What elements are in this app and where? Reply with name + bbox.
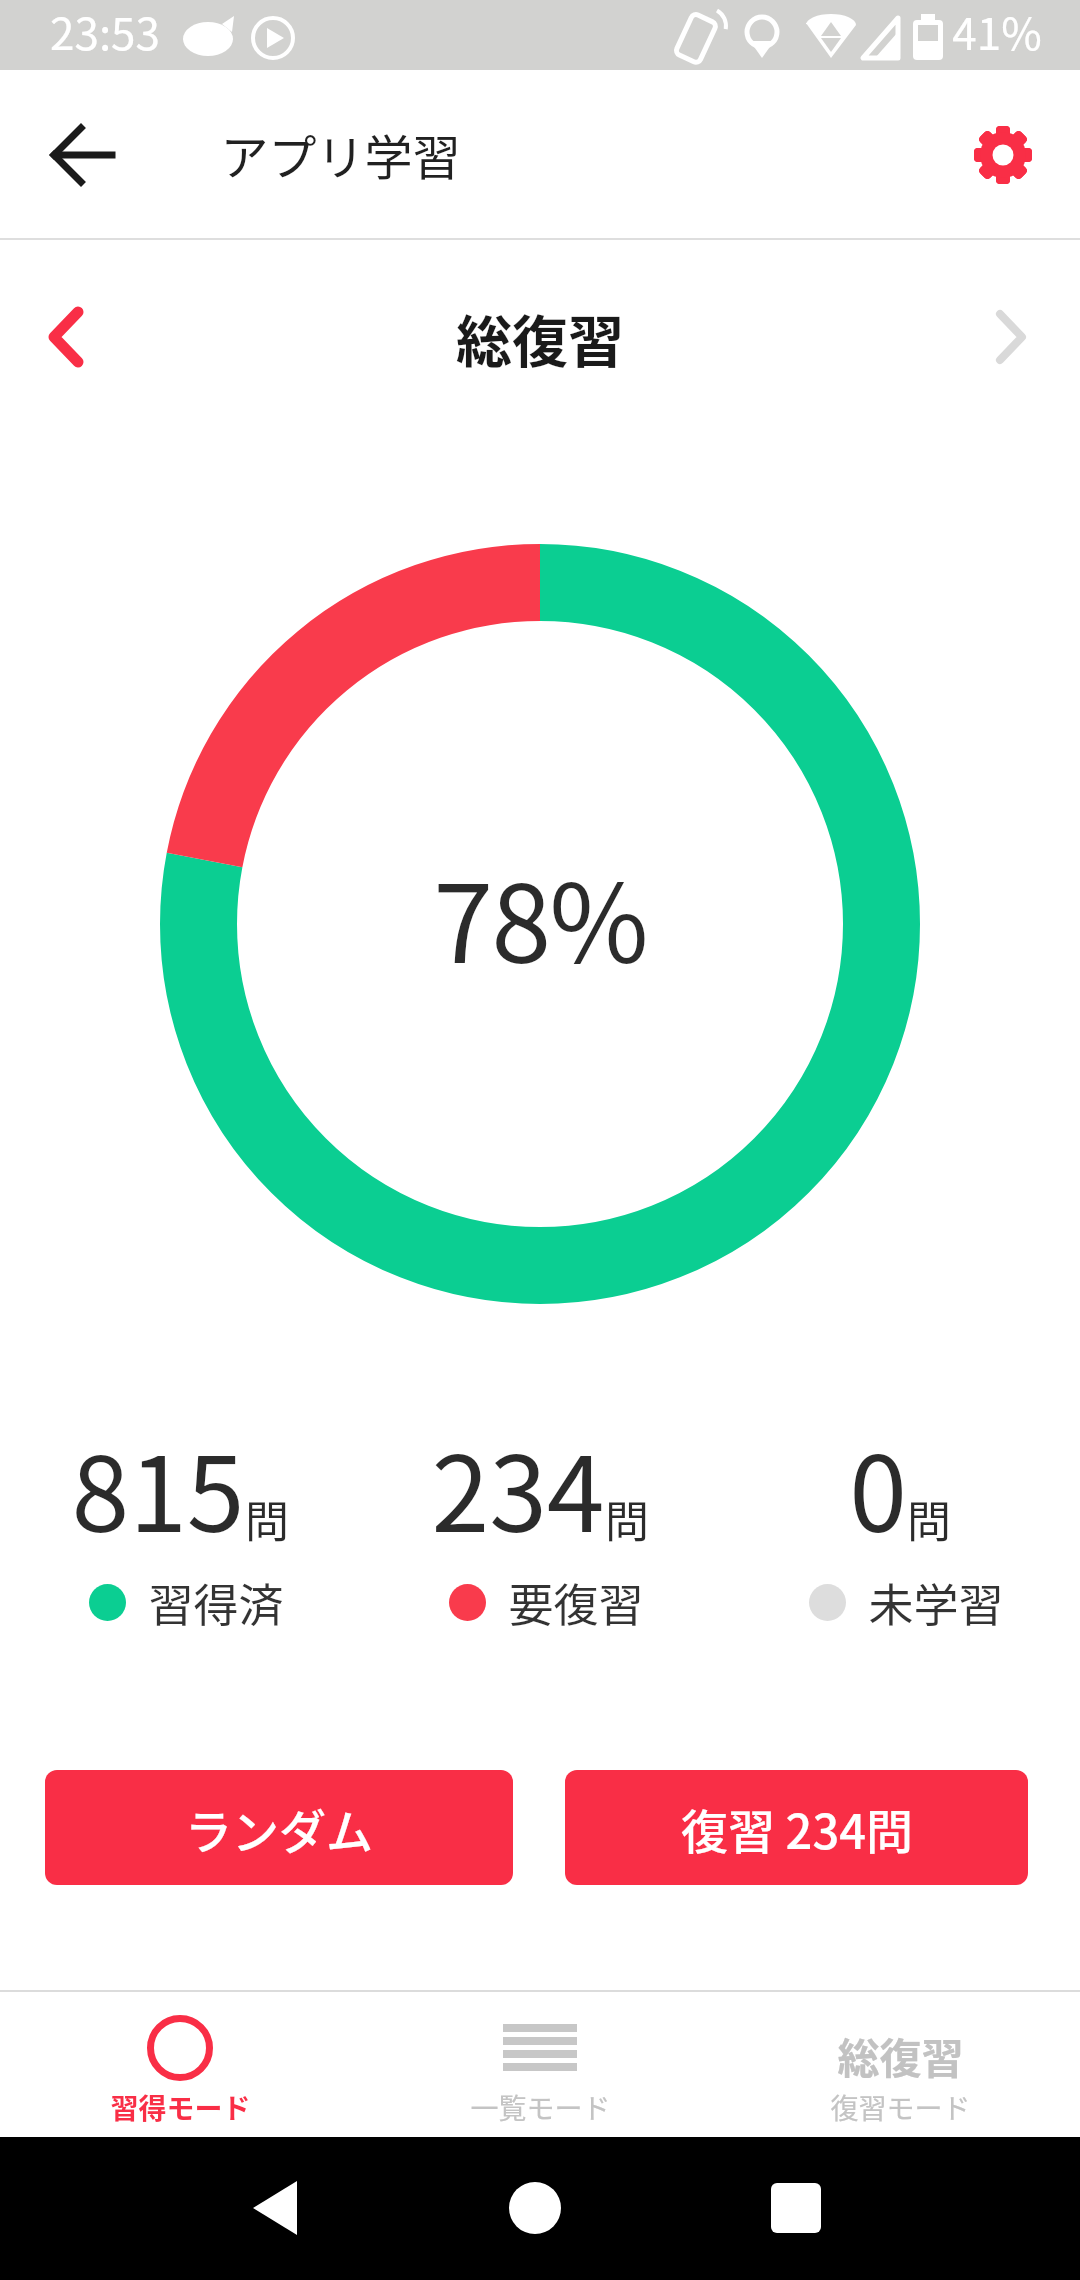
staticText: 復習モード <box>830 2087 971 2128</box>
staticText: 未学習 <box>868 1570 1004 1634</box>
staticText: 総復習 <box>837 2025 964 2085</box>
button[interactable] <box>40 110 130 200</box>
staticText: 一覧モード <box>470 2087 611 2128</box>
staticText: アプリ学習 <box>220 119 461 189</box>
button[interactable]: 習得モード <box>60 1992 300 2137</box>
staticText: 78% <box>433 838 647 994</box>
button[interactable]: 復習 234問 <box>565 1770 1028 1885</box>
button[interactable] <box>0 2137 360 2280</box>
staticText: 要復習 <box>508 1570 644 1634</box>
button[interactable] <box>360 2137 720 2280</box>
staticText: 復習 234問 <box>681 1794 913 1862</box>
staticText: 問 <box>605 1487 649 1551</box>
staticText: 総復習 <box>456 297 624 378</box>
staticText: 習得済 <box>148 1570 284 1634</box>
staticText: 習得モード <box>110 2087 251 2128</box>
button[interactable]: ランダム <box>45 1770 513 1885</box>
button[interactable]: 一覧モード <box>420 1992 660 2137</box>
staticText: ランダム <box>185 1794 373 1862</box>
staticText: 41% <box>952 0 1042 63</box>
button[interactable] <box>720 2137 1080 2280</box>
staticText: 0 <box>849 1411 907 1562</box>
staticText: 815 <box>71 1411 245 1562</box>
button[interactable]: 総復習 <box>780 1992 1020 2137</box>
staticText: 問 <box>907 1487 951 1551</box>
button[interactable] <box>30 300 105 375</box>
button[interactable] <box>962 114 1044 196</box>
staticText: 23:53 <box>50 0 160 63</box>
staticText: 問 <box>245 1487 289 1551</box>
staticText: 234 <box>431 1411 605 1562</box>
button[interactable] <box>975 300 1050 375</box>
